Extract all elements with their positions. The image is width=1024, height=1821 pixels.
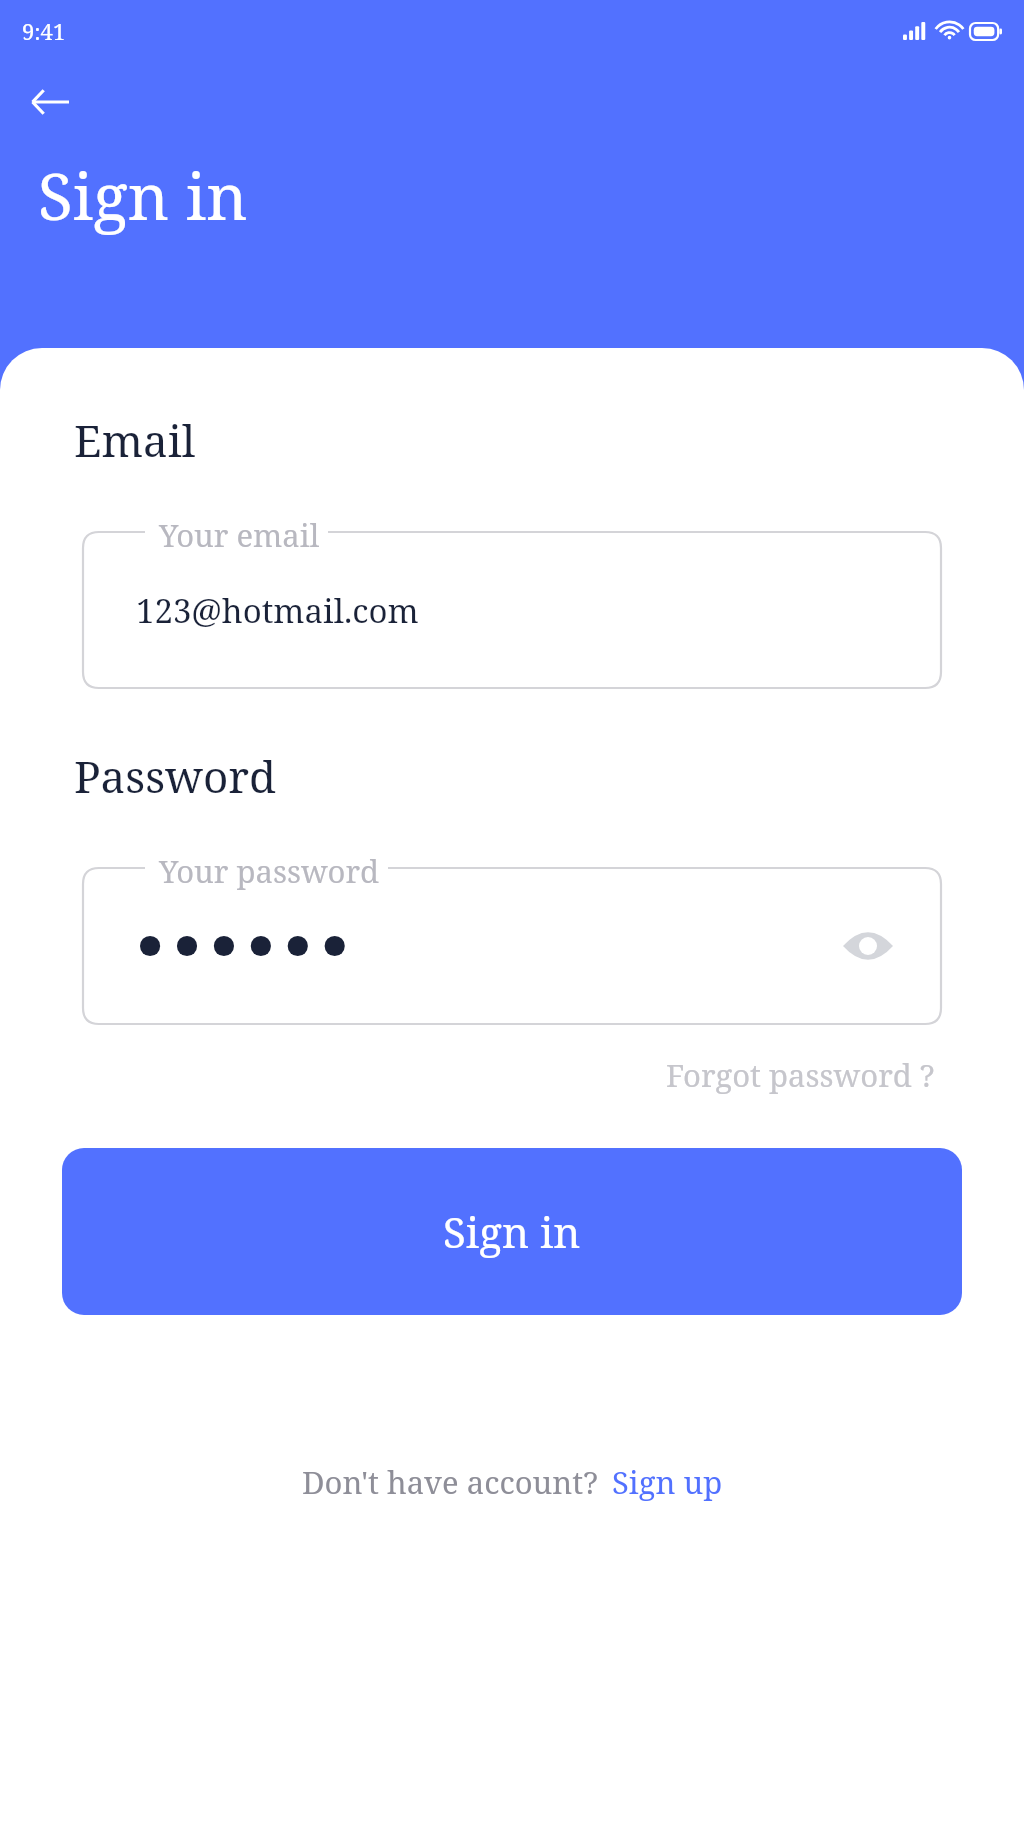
staticText: Your password bbox=[159, 850, 380, 892]
button[interactable]: Forgot password ? bbox=[660, 1046, 941, 1104]
staticText: Your email bbox=[159, 514, 320, 556]
staticText: Email bbox=[74, 410, 196, 470]
staticText: Sign in bbox=[443, 1203, 581, 1260]
staticText: Forgot password ? bbox=[666, 1054, 935, 1096]
button[interactable]: Sign in bbox=[62, 1148, 962, 1315]
button[interactable]: Show password bbox=[83, 868, 941, 1024]
staticText: Don't have account? bbox=[302, 1461, 598, 1503]
staticText: 123@hotmail.com bbox=[136, 588, 419, 633]
staticText: 9:41 bbox=[22, 16, 66, 46]
staticText: Sign up bbox=[612, 1461, 723, 1503]
staticText: Password bbox=[74, 746, 277, 806]
staticText: Sign in bbox=[38, 152, 248, 239]
button[interactable]: Back bbox=[22, 74, 78, 130]
button[interactable]: Sign up bbox=[598, 1461, 723, 1503]
button[interactable]: 123@hotmail.com bbox=[83, 532, 941, 688]
button[interactable]: Show password bbox=[835, 913, 901, 979]
